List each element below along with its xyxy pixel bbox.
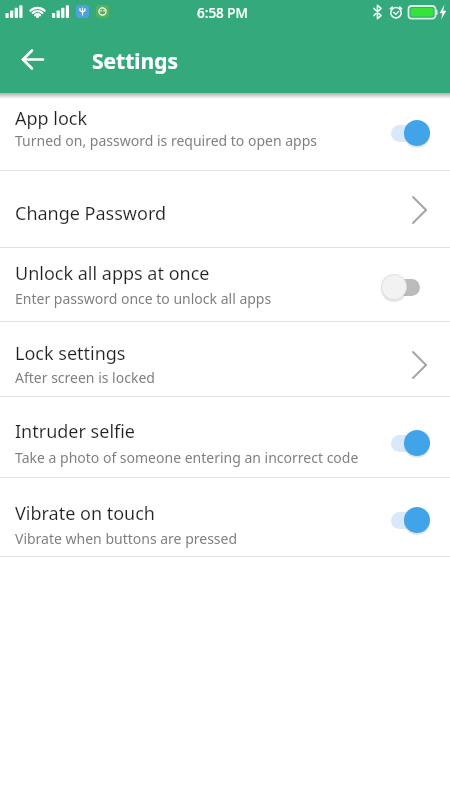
staticText: Intruder selfie bbox=[15, 419, 136, 444]
staticText: Turned on, password is required to open … bbox=[15, 131, 318, 150]
staticText: Vibrate on touch bbox=[15, 501, 155, 526]
staticText: 6:58 PM bbox=[197, 4, 248, 22]
staticText: Unlock all apps at once bbox=[15, 261, 210, 286]
staticText: Enter password once to unlock all apps bbox=[15, 289, 272, 308]
staticText: App lock bbox=[15, 106, 88, 131]
staticText: Vibrate when buttons are pressed bbox=[15, 529, 238, 548]
staticText: Settings bbox=[92, 47, 179, 76]
staticText: Take a photo of someone entering an inco… bbox=[15, 448, 359, 467]
staticText: Lock settings bbox=[15, 341, 126, 366]
staticText: Change Password bbox=[15, 201, 167, 226]
staticText: After screen is locked bbox=[15, 368, 155, 387]
